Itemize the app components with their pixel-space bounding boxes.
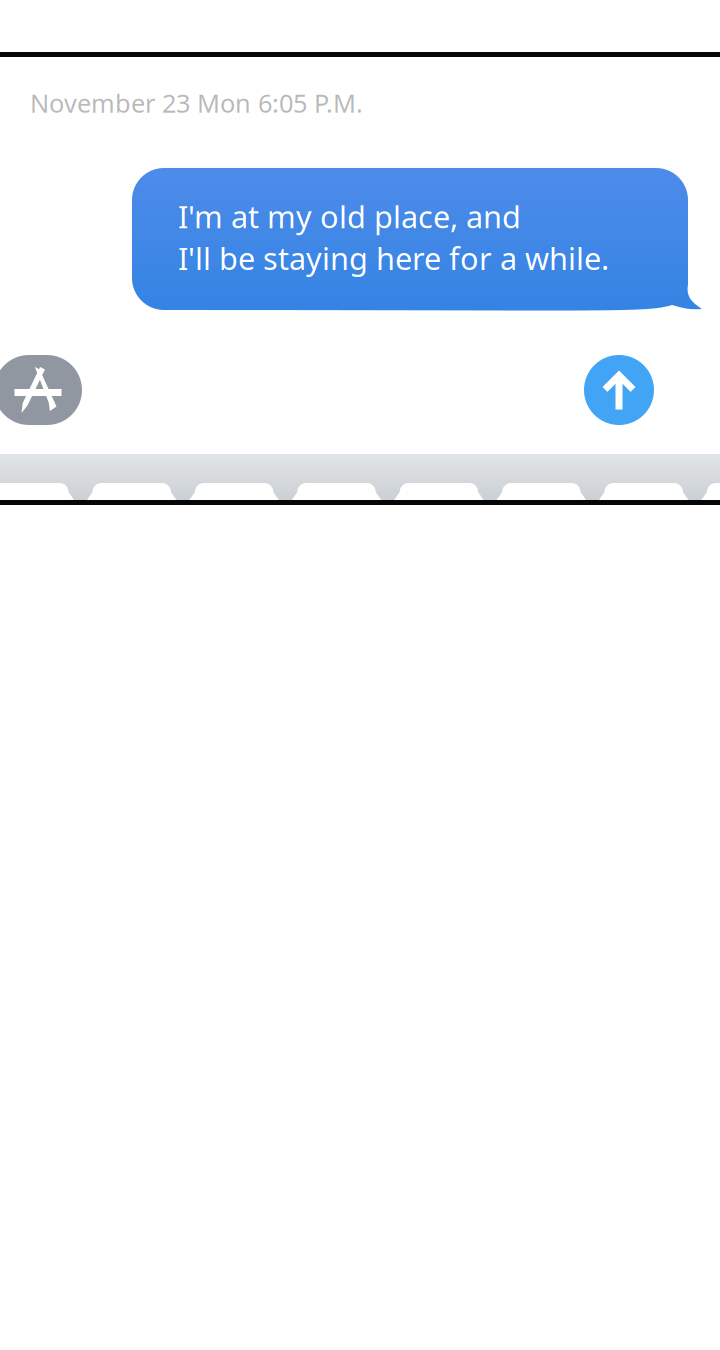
button[interactable]: Send xyxy=(584,355,654,425)
button[interactable]: App Store xyxy=(0,355,82,425)
staticText: I'm at my old place, and xyxy=(178,196,521,237)
staticText: I'll be staying here for a while. xyxy=(178,238,609,278)
staticText: November 23 Mon 6:05 P.M. xyxy=(30,86,363,120)
